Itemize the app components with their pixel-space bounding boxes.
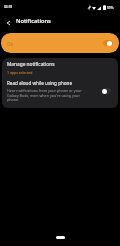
staticText: Hear notifications from your phone or yo… — [7, 88, 83, 102]
staticText: Manage notifications — [7, 61, 55, 68]
button[interactable]: Read aloud while using phone toggle — [101, 88, 111, 94]
staticText: 1 apps selected — [7, 70, 33, 75]
staticText: 04:18 — [4, 5, 13, 9]
staticText: 59% — [107, 6, 114, 10]
staticText: Notifications — [16, 17, 51, 25]
button[interactable]: Read aloud while using phone — [2, 77, 118, 106]
button[interactable]: Back — [1, 16, 15, 30]
button[interactable]: On — [1, 33, 119, 53]
staticText: Read aloud while using phone — [7, 80, 73, 86]
staticText: On — [7, 41, 14, 47]
button[interactable]: Manage notifications — [2, 58, 118, 77]
